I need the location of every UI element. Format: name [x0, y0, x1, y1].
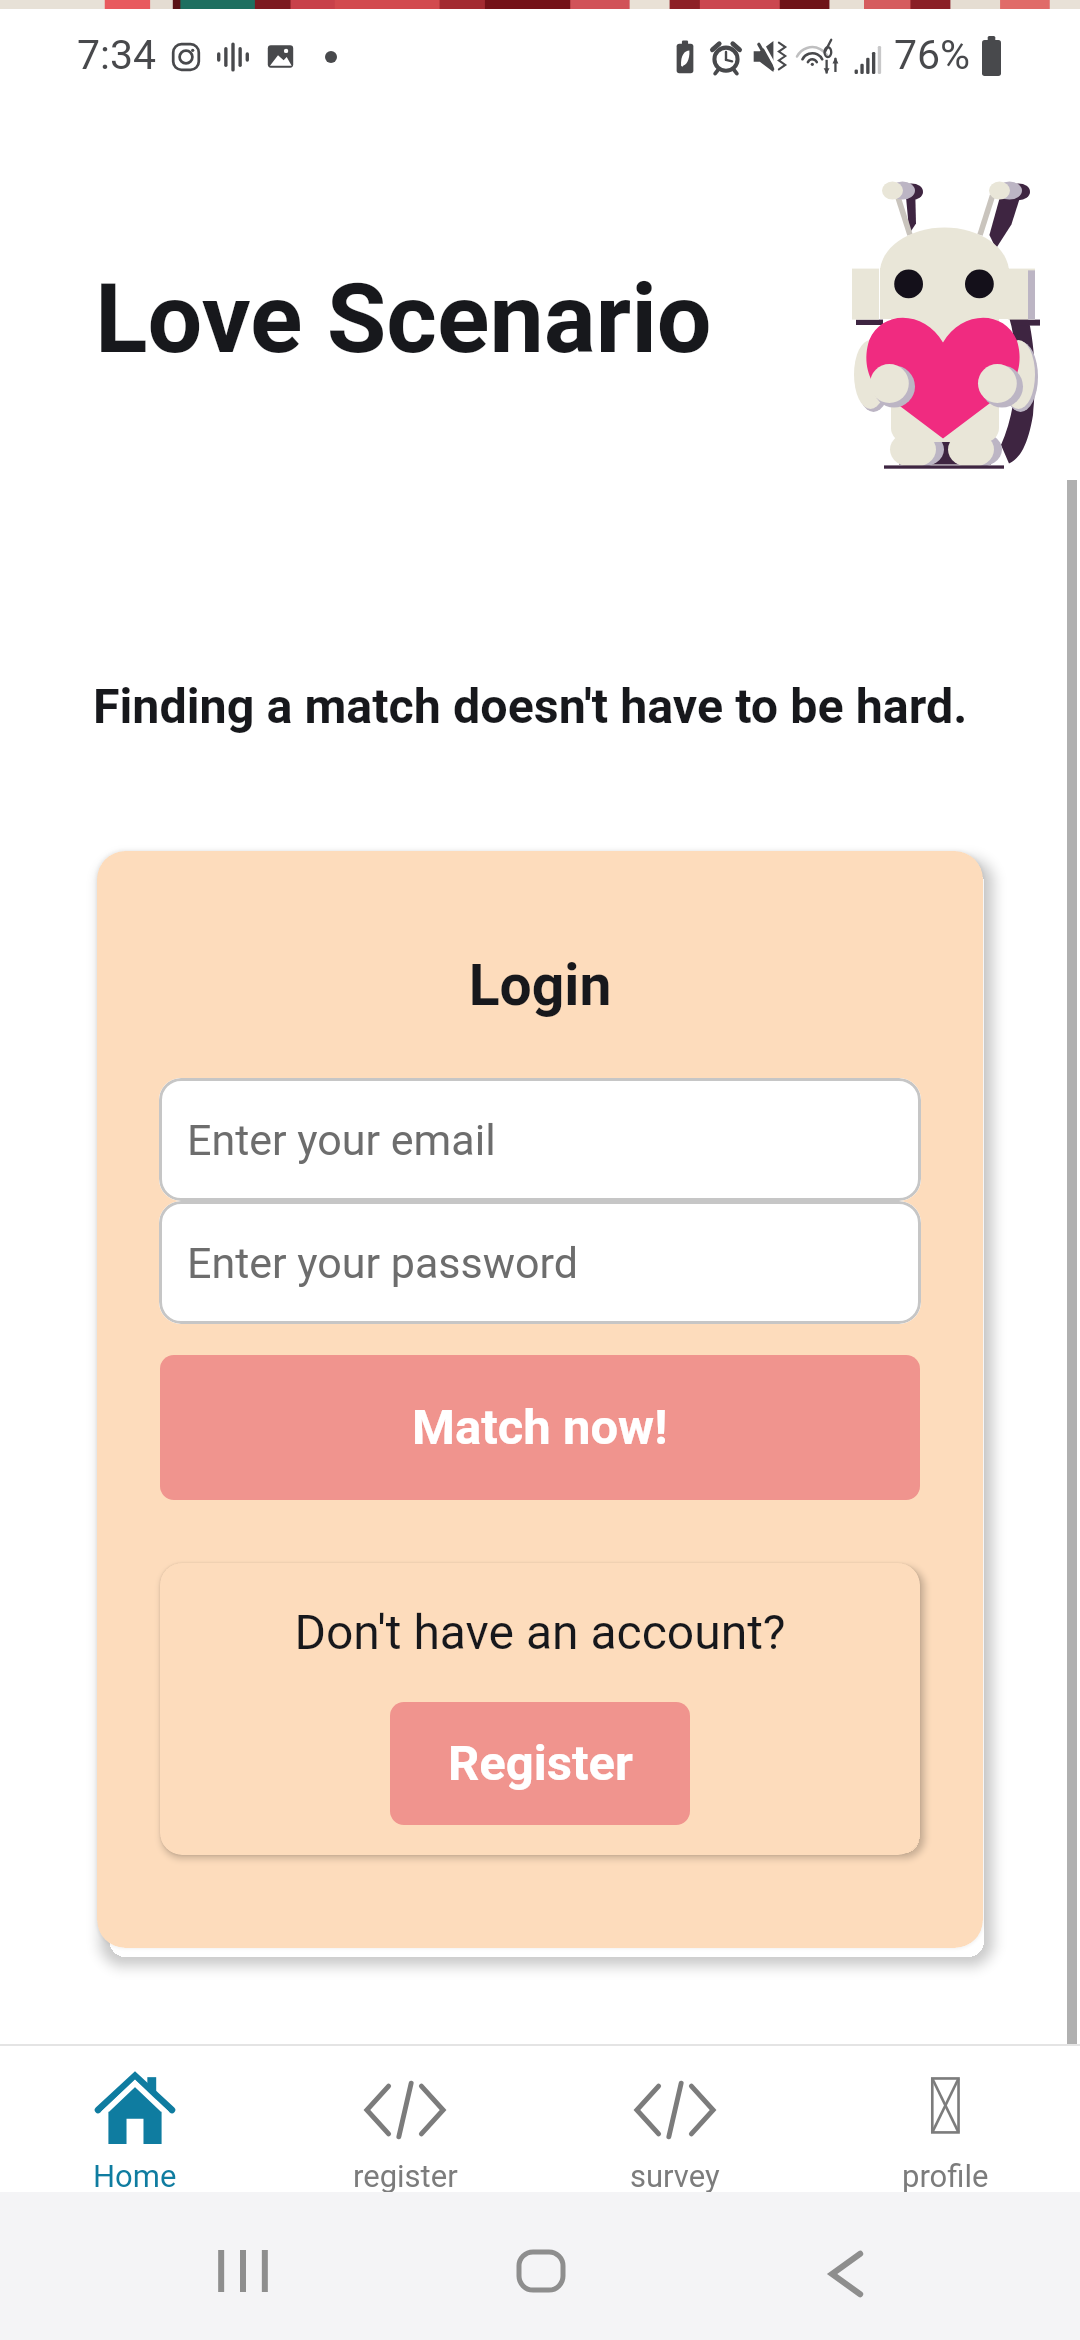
- button[interactable]: Home: [465, 2197, 617, 2340]
- button[interactable]: Enter your password: [159, 1201, 921, 1324]
- staticText: 76%: [894, 31, 971, 79]
- staticText: Enter your password: [187, 1238, 578, 1288]
- button[interactable]: Register: [390, 1702, 690, 1825]
- button[interactable]: Enter your email: [159, 1078, 921, 1201]
- staticText: survey: [630, 2158, 720, 2194]
- staticText: Enter your email: [187, 1115, 496, 1165]
- button[interactable]: profile: [810, 2046, 1080, 2192]
- staticText: Love Scenario: [95, 262, 712, 376]
- button[interactable]: Recent apps: [167, 2197, 319, 2340]
- button[interactable]: Home: [0, 2046, 270, 2192]
- button[interactable]: register: [270, 2046, 540, 2192]
- other: profile: [904, 2072, 986, 2148]
- other: survey: [634, 2072, 716, 2148]
- staticText: 7:34: [77, 31, 157, 79]
- staticText: register: [353, 2158, 458, 2194]
- other: Home: [94, 2072, 176, 2148]
- staticText: Login: [97, 952, 983, 1019]
- staticText: Finding a match doesn't have to be hard.: [93, 678, 968, 735]
- staticText: Don't have an account?: [160, 1604, 920, 1660]
- staticText: Register: [448, 1735, 633, 1792]
- button[interactable]: Back: [771, 2200, 923, 2340]
- other: register: [364, 2072, 446, 2148]
- staticText: Match now!: [412, 1399, 668, 1456]
- staticText: profile: [902, 2158, 989, 2194]
- staticText: Home: [93, 2158, 177, 2194]
- button[interactable]: survey: [540, 2046, 810, 2192]
- button[interactable]: Match now!: [160, 1355, 920, 1500]
